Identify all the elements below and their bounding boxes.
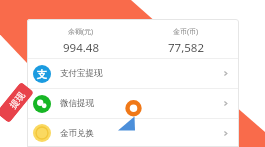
- staticText: 金币兑换: [60, 128, 94, 139]
- staticText: 余额(元): [68, 27, 94, 37]
- staticText: 提现: [7, 90, 27, 111]
- button[interactable]: 金币兑换: [28, 119, 238, 147]
- staticText: 支: [37, 68, 47, 81]
- staticText: 微信提现: [60, 98, 94, 109]
- staticText: 994.48: [63, 40, 99, 56]
- button[interactable]: 微信提现: [28, 89, 238, 118]
- staticText: 支付宝提现: [60, 68, 103, 79]
- staticText: 77,582: [168, 40, 204, 56]
- button[interactable]: 支: [28, 59, 238, 88]
- button[interactable]: 提现: [0, 82, 34, 123]
- staticText: 金币(币): [173, 27, 199, 37]
